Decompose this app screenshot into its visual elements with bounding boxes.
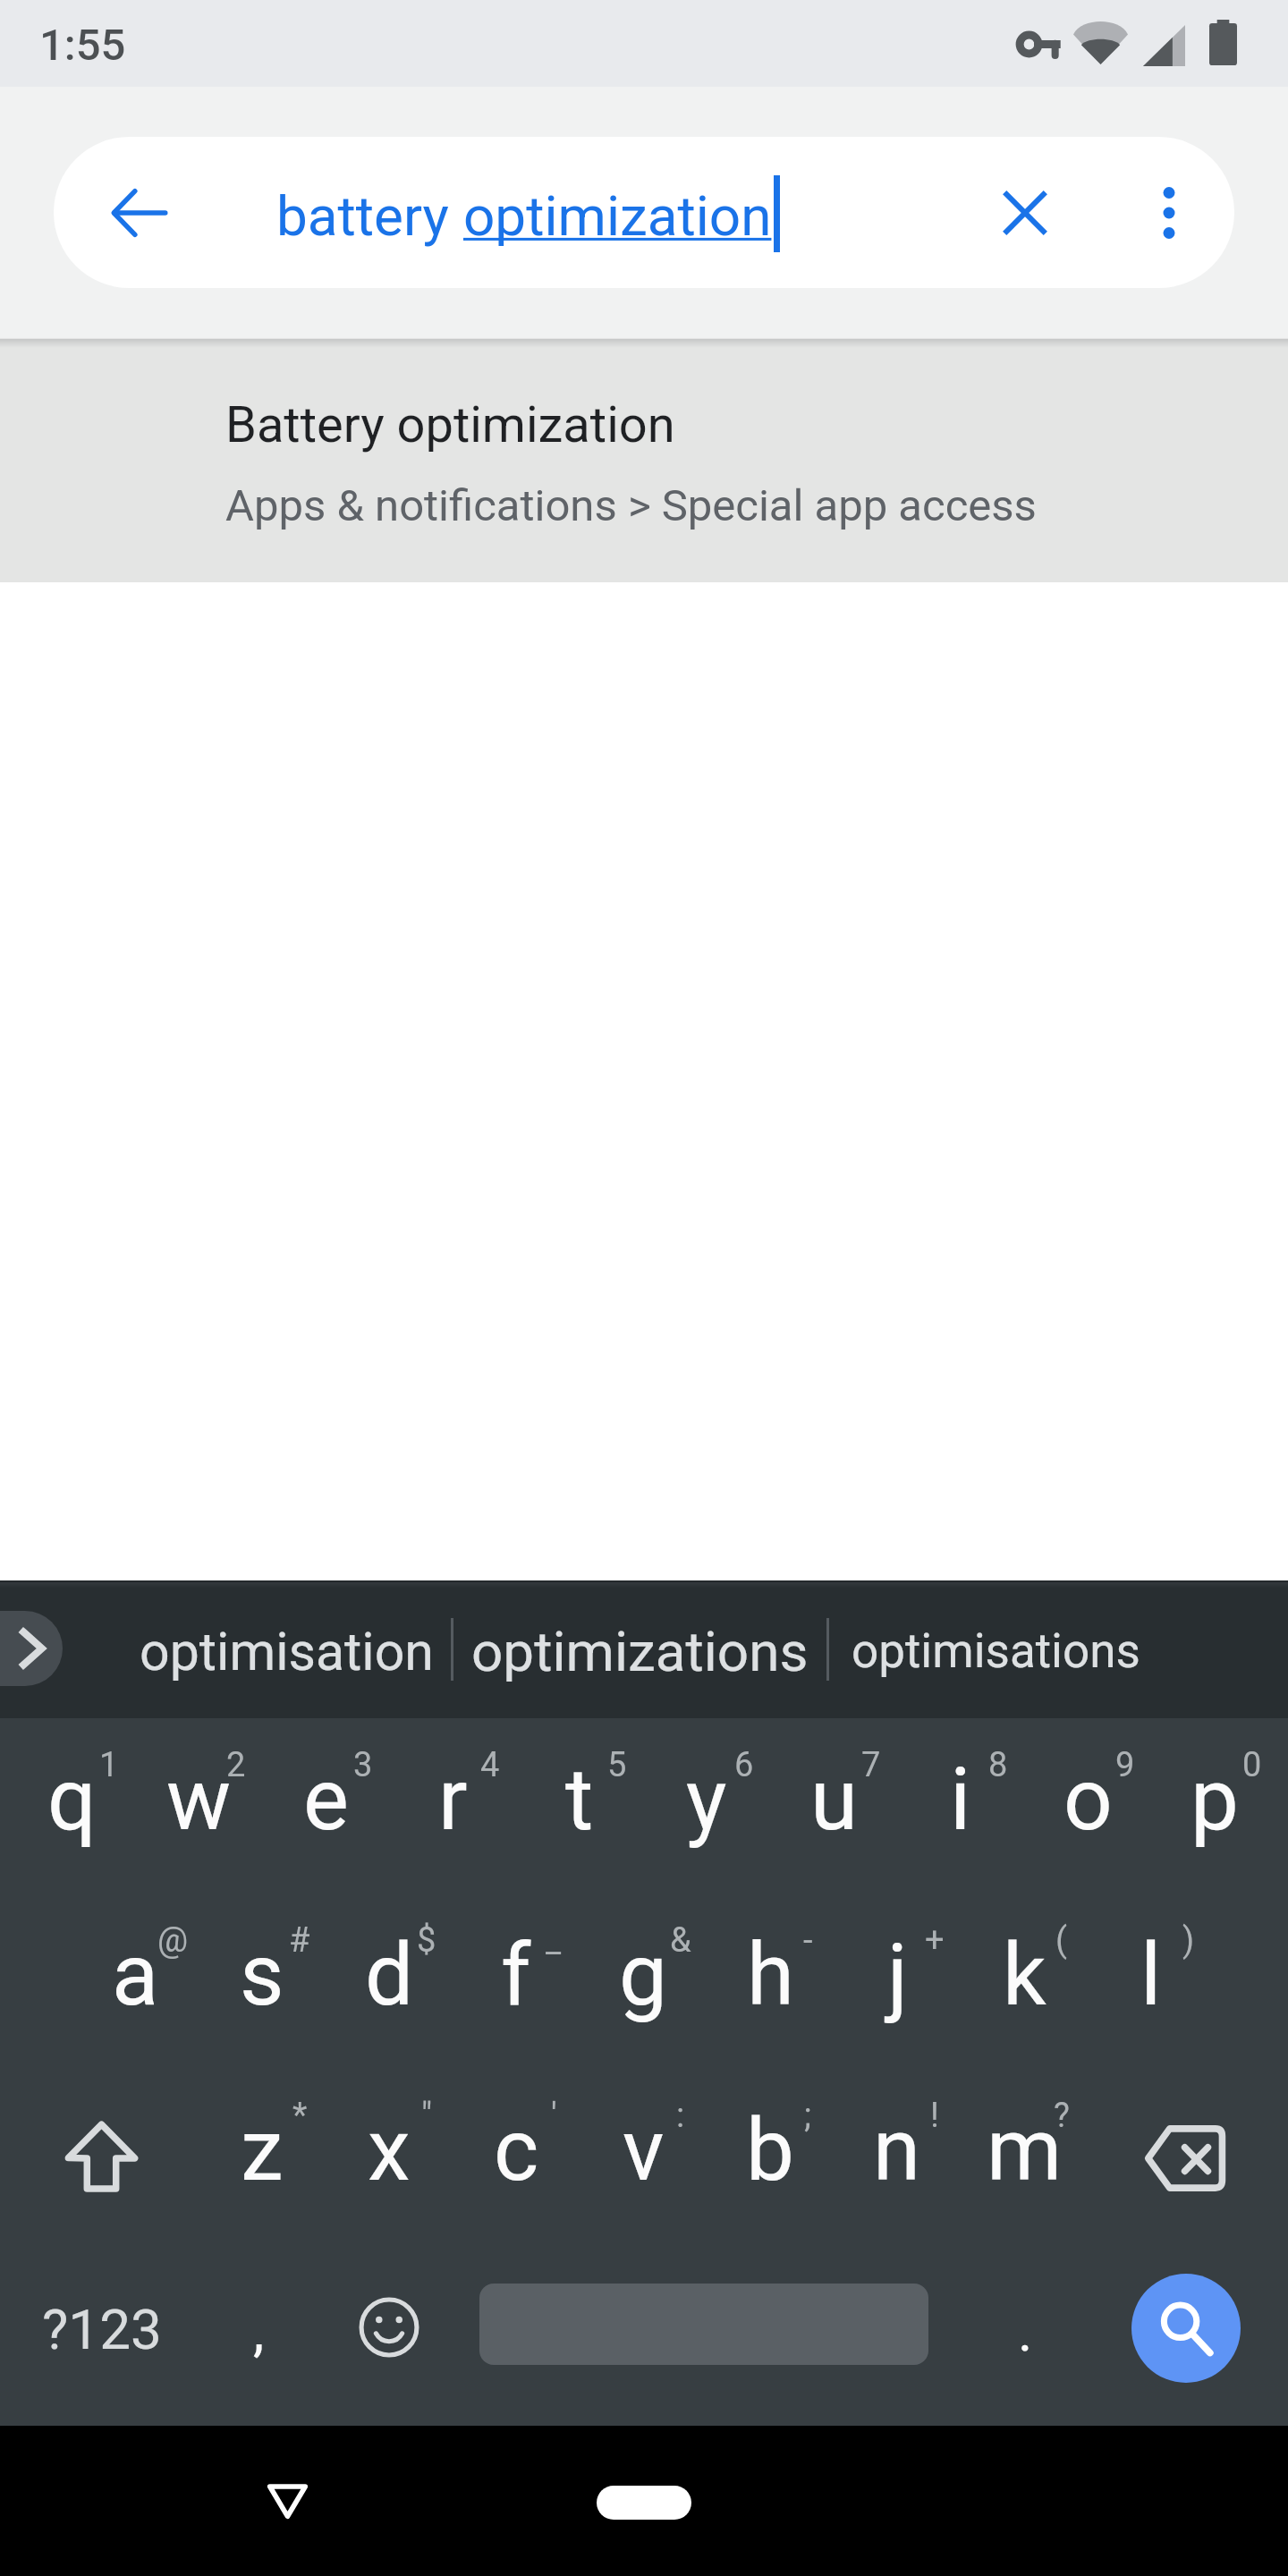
button[interactable]: Search: [1089, 2244, 1279, 2419]
staticText: ,: [253, 2299, 265, 2364]
staticText: k: [1003, 1925, 1046, 2026]
button[interactable]: Hide keyboard: [242, 2456, 332, 2546]
button[interactable]: o: [1024, 1718, 1151, 1894]
staticText: c: [494, 2100, 539, 2201]
button[interactable]: q: [8, 1718, 135, 1894]
staticText: r: [438, 1750, 468, 1851]
button[interactable]: optimisations: [829, 1580, 1162, 1718]
staticText: ;: [804, 2096, 812, 2136]
staticText: 7: [861, 1745, 881, 1785]
staticText: 5: [607, 1745, 627, 1785]
staticText: 6: [734, 1745, 754, 1785]
staticText: t: [565, 1750, 594, 1851]
button[interactable]: v: [580, 2069, 707, 2244]
button[interactable]: Period: [962, 2244, 1089, 2419]
staticText: u: [810, 1750, 858, 1851]
staticText: optimisations: [852, 1623, 1140, 1679]
staticText: +: [925, 1920, 945, 1961]
staticText: l: [1140, 1925, 1162, 2026]
button[interactable]: x: [326, 2069, 453, 2244]
staticText: a: [112, 1925, 159, 2026]
staticText: f: [501, 1925, 531, 2026]
staticText: 9: [1115, 1745, 1135, 1785]
staticText: 4: [480, 1745, 500, 1785]
button[interactable]: b: [707, 2069, 834, 2244]
staticText: .: [1018, 2299, 1033, 2364]
button[interactable]: Battery optimization: [0, 338, 1288, 582]
button[interactable]: Comma: [199, 2244, 326, 2419]
button[interactable]: y: [643, 1718, 770, 1894]
button[interactable]: Home: [597, 2486, 691, 2520]
staticText: ?: [1054, 2096, 1070, 2136]
staticText: q: [47, 1750, 97, 1851]
staticText: e: [303, 1750, 349, 1851]
button[interactable]: j: [834, 1894, 961, 2069]
staticText: n: [873, 2100, 921, 2201]
button[interactable]: l: [1088, 1894, 1215, 2069]
staticText: (: [1055, 1920, 1068, 1961]
button[interactable]: battery: [224, 137, 1020, 288]
staticText: w: [166, 1750, 232, 1851]
button[interactable]: w: [135, 1718, 262, 1894]
button[interactable]: g: [580, 1894, 707, 2069]
button[interactable]: More options: [1120, 164, 1218, 262]
button[interactable]: m: [961, 2069, 1088, 2244]
button[interactable]: Emoji: [326, 2244, 453, 2419]
staticText: :: [676, 2096, 685, 2136]
button[interactable]: s: [199, 1894, 326, 2069]
button[interactable]: n: [834, 2069, 961, 2244]
staticText: $: [417, 1920, 436, 1961]
staticText: ': [551, 2096, 557, 2136]
button[interactable]: ?123: [8, 2244, 199, 2419]
staticText: h: [747, 1925, 794, 2026]
staticText: #: [289, 1920, 310, 1961]
staticText: @: [157, 1920, 189, 1961]
staticText: 0: [1242, 1745, 1262, 1785]
staticText: ): [1182, 1920, 1195, 1961]
button[interactable]: a: [72, 1894, 199, 2069]
button[interactable]: Space: [453, 2244, 962, 2419]
staticText: -: [803, 1920, 813, 1961]
staticText: 2: [226, 1745, 246, 1785]
staticText: o: [1063, 1750, 1113, 1851]
button[interactable]: e: [262, 1718, 389, 1894]
staticText: ?123: [42, 2297, 162, 2362]
staticText: v: [623, 2100, 665, 2201]
button[interactable]: Clear query: [976, 164, 1074, 262]
staticText: 1:55: [39, 20, 126, 71]
staticText: d: [365, 1925, 414, 2026]
button[interactable]: p: [1151, 1718, 1278, 1894]
staticText: Battery optimization: [225, 395, 675, 454]
button[interactable]: optimisation: [123, 1580, 451, 1718]
button[interactable]: optimizations: [453, 1580, 826, 1718]
button[interactable]: r: [389, 1718, 516, 1894]
staticText: j: [887, 1925, 908, 2026]
staticText: s: [240, 1925, 284, 2026]
button[interactable]: c: [453, 2069, 580, 2244]
staticText: 1: [99, 1745, 119, 1785]
staticText: *: [292, 2096, 308, 2136]
button[interactable]: d: [326, 1894, 453, 2069]
staticText: m: [987, 2100, 1063, 2201]
staticText: g: [619, 1925, 667, 2026]
staticText: x: [368, 2100, 411, 2201]
button[interactable]: h: [707, 1894, 834, 2069]
button[interactable]: t: [516, 1718, 643, 1894]
button[interactable]: Show more suggestions: [0, 1611, 63, 1686]
button[interactable]: u: [770, 1718, 897, 1894]
button[interactable]: i: [897, 1718, 1024, 1894]
button[interactable]: Backspace: [1088, 2069, 1278, 2244]
button[interactable]: k: [961, 1894, 1088, 2069]
staticText: Apps & notifications > Special app acces…: [225, 480, 1037, 531]
staticText: &: [670, 1920, 691, 1961]
staticText: ": [421, 2096, 433, 2136]
staticText: y: [686, 1750, 727, 1851]
staticText: optimization: [463, 183, 772, 249]
button[interactable]: z: [199, 2069, 326, 2244]
button[interactable]: f: [453, 1894, 580, 2069]
button[interactable]: Shift: [8, 2069, 199, 2244]
staticText: optimizations: [471, 1619, 809, 1684]
staticText: !: [930, 2096, 939, 2136]
staticText: b: [746, 2100, 794, 2201]
button[interactable]: Navigate up: [90, 164, 189, 262]
